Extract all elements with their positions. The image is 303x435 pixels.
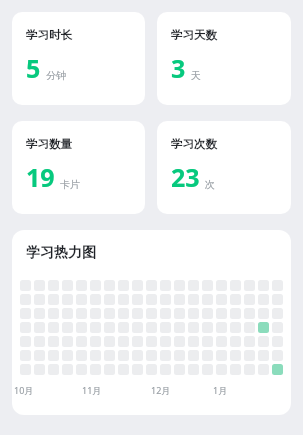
staticText: 次 <box>205 178 215 191</box>
staticText: 1月 <box>213 384 228 396</box>
staticText: 学习数量 <box>26 137 72 151</box>
staticText: 分钟 <box>46 69 66 82</box>
staticText: 23 <box>171 160 200 194</box>
button[interactable]: 学习热力图 <box>12 230 291 415</box>
staticText: 11月 <box>82 384 102 396</box>
button[interactable]: 学习时长 <box>12 12 145 105</box>
staticText: 5 <box>26 51 41 85</box>
button[interactable]: 学习次数 <box>157 121 291 214</box>
staticText: 12月 <box>151 384 171 396</box>
staticText: 卡片 <box>60 178 80 191</box>
staticText: 3 <box>171 51 186 85</box>
staticText: 学习天数 <box>171 28 217 42</box>
staticText: 学习热力图 <box>26 244 96 262</box>
staticText: 10月 <box>14 384 34 396</box>
staticText: 19 <box>26 160 55 194</box>
staticText: 学习次数 <box>171 137 217 151</box>
staticText: 天 <box>191 69 201 82</box>
staticText: 学习时长 <box>26 28 72 42</box>
button[interactable]: 学习数量 <box>12 121 145 214</box>
button[interactable]: 学习天数 <box>157 12 291 105</box>
